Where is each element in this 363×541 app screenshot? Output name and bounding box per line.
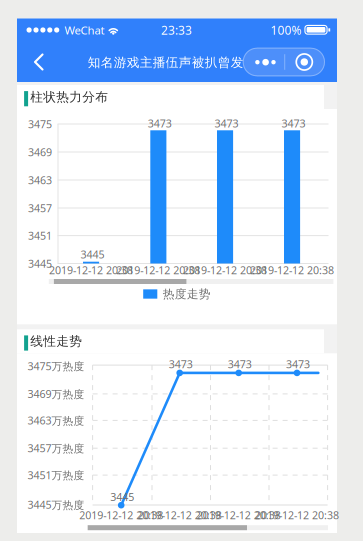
staticText: 23:33 xyxy=(161,22,192,38)
staticText: 2019-12-12 20:38 xyxy=(49,263,133,277)
staticText: 3475万热度 xyxy=(27,359,84,373)
staticText: 热度走势 xyxy=(163,287,211,301)
staticText: 3473 xyxy=(286,357,310,371)
staticText: 3473 xyxy=(281,116,305,130)
staticText: 2019-12-12 20:38 xyxy=(255,508,339,522)
staticText: 2019-12-12 20:38 xyxy=(79,508,163,522)
staticText: 3457万热度 xyxy=(27,441,84,455)
staticText: 3469万热度 xyxy=(27,387,84,401)
button[interactable]: Back xyxy=(19,41,59,83)
staticText: WeChat xyxy=(64,22,104,38)
staticText: 100% xyxy=(270,22,301,38)
staticText: 3445 xyxy=(110,490,134,504)
staticText: 3451万热度 xyxy=(27,468,84,482)
staticText: 3473 xyxy=(228,357,252,371)
staticText: 3445 xyxy=(28,256,52,271)
staticText: 3445 xyxy=(80,247,104,261)
staticText: 3469 xyxy=(28,145,52,159)
staticText: 2019-12-12 20:38 xyxy=(250,263,334,277)
staticText: 3451 xyxy=(28,228,52,243)
staticText: 3463 xyxy=(28,173,52,187)
staticText: 3457 xyxy=(28,201,52,215)
staticText: 柱状热力分布 xyxy=(30,89,108,105)
staticText: 2019-12-12 20:38 xyxy=(183,263,267,277)
button[interactable]: More options xyxy=(243,48,325,76)
staticText: 3463万热度 xyxy=(27,413,84,428)
staticText: 3473 xyxy=(214,116,238,130)
staticText: 2019-12-12 20:38 xyxy=(197,508,281,522)
staticText: 2019-12-12 20:38 xyxy=(138,508,222,522)
staticText: 知名游戏主播伍声被扒曾发… xyxy=(88,53,254,71)
staticText: 3473 xyxy=(169,357,193,371)
staticText: 2019-12-12 20:38 xyxy=(116,263,200,277)
staticText: 线性走势 xyxy=(30,333,82,349)
staticText: 3445万热度 xyxy=(27,497,84,512)
staticText: 3475 xyxy=(28,117,52,131)
staticText: 3473 xyxy=(148,116,172,130)
